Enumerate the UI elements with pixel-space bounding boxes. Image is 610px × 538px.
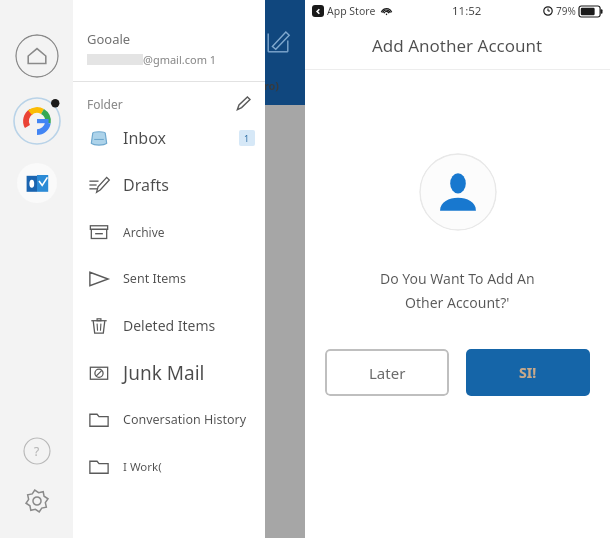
button[interactable]: Home: [15, 34, 59, 78]
staticText: Later: [369, 363, 406, 383]
staticText: @gmail.com 1: [143, 52, 217, 67]
staticText: Sent Items: [123, 270, 186, 287]
button[interactable]: I Work(: [73, 443, 265, 490]
staticText: Drafts: [123, 174, 169, 196]
button[interactable]: Drafts: [73, 161, 265, 208]
button[interactable]: Outlook account: [17, 163, 57, 203]
staticText: 11:52: [452, 3, 482, 19]
button[interactable]: SI!: [466, 349, 590, 396]
staticText: Do You Want To Add An: [380, 269, 535, 288]
button[interactable]: Conversation History: [73, 396, 265, 443]
button[interactable]: Archive: [73, 208, 265, 255]
button[interactable]: Google account: [13, 97, 61, 145]
button[interactable]: Settings: [23, 487, 51, 515]
button[interactable]: Help: [23, 437, 51, 465]
staticText: Junk Mail: [123, 360, 205, 386]
staticText: SI!: [519, 363, 537, 382]
button[interactable]: Gooale: [73, 30, 265, 67]
staticText: Gooale: [87, 30, 131, 48]
staticText: Other Account?': [405, 293, 510, 312]
button[interactable]: Inbox: [73, 114, 265, 161]
staticText: I Work(: [123, 459, 162, 475]
staticText: Conversation History: [123, 411, 247, 428]
button[interactable]: Junk Mail: [73, 349, 265, 396]
staticText: Archive: [123, 224, 165, 240]
button[interactable]: Edit folders: [233, 94, 253, 114]
staticText: 79%: [556, 4, 576, 18]
staticText: Folder: [87, 96, 123, 112]
staticText: Tro): [258, 78, 280, 93]
staticText: ?: [34, 443, 40, 459]
staticText: App Store: [327, 4, 376, 18]
button[interactable]: Deleted Items: [73, 302, 265, 349]
button[interactable]: Later: [325, 349, 449, 396]
staticText: Inbox: [123, 127, 166, 149]
staticText: 1: [244, 132, 250, 144]
staticText: Add Another Account: [372, 34, 543, 57]
button[interactable]: Sent Items: [73, 255, 265, 302]
button[interactable]: Compose: [264, 28, 292, 56]
staticText: Deleted Items: [123, 316, 216, 335]
